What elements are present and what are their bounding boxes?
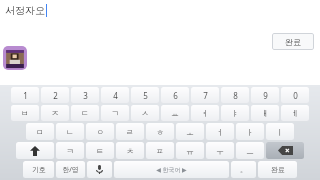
button[interactable]: ㅇ: [86, 123, 114, 140]
staticText: ㅈ: [51, 108, 59, 118]
button[interactable]: ◀ 한국어 ▶: [114, 161, 229, 178]
staticText: ㅔ: [291, 108, 299, 118]
button[interactable]: ㅅ: [131, 105, 159, 121]
staticText: ㅌ: [96, 146, 104, 156]
button[interactable]: 9: [251, 87, 279, 103]
button[interactable]: 7: [191, 87, 219, 103]
button[interactable]: ㄹ: [116, 123, 144, 140]
button[interactable]: ㅌ: [86, 142, 114, 159]
button[interactable]: ㄷ: [71, 105, 99, 121]
staticText: 5: [143, 90, 148, 101]
staticText: 서정자오: [5, 4, 45, 17]
button[interactable]: ㅔ: [281, 105, 309, 121]
button[interactable]: ㄴ: [56, 123, 84, 140]
staticText: 9: [263, 90, 268, 101]
staticText: 7: [203, 90, 208, 101]
staticText: ㅛ: [171, 108, 179, 118]
button[interactable]: 한/영: [56, 161, 85, 178]
button[interactable]: ㅁ: [26, 123, 54, 140]
staticText: ㅎ: [156, 127, 164, 137]
button[interactable]: Shift: [16, 142, 54, 159]
staticText: ㅗ: [186, 127, 194, 137]
staticText: ㅂ: [21, 108, 29, 118]
button[interactable]: Backspace: [266, 142, 304, 159]
button[interactable]: ㅍ: [146, 142, 174, 159]
button[interactable]: 5: [131, 87, 159, 103]
staticText: ㅑ: [231, 108, 239, 118]
button[interactable]: ㅐ: [251, 105, 279, 121]
staticText: 1: [23, 90, 28, 101]
button[interactable]: 0: [281, 87, 309, 103]
button[interactable]: 4: [101, 87, 129, 103]
staticText: 완료: [271, 165, 285, 174]
staticText: 2: [53, 90, 58, 101]
staticText: 기호: [32, 165, 46, 174]
button[interactable]: 。: [231, 161, 256, 178]
button[interactable]: ㅜ: [206, 142, 234, 159]
staticText: ㅇ: [96, 127, 104, 137]
staticText: ㄱ: [111, 108, 119, 118]
staticText: 완료: [285, 37, 301, 47]
staticText: 3: [83, 90, 88, 101]
staticText: ㅜ: [216, 146, 224, 156]
staticText: ㅅ: [141, 108, 149, 118]
button[interactable]: ㅑ: [221, 105, 249, 121]
staticText: 。: [240, 165, 247, 174]
staticText: ㅐ: [261, 108, 269, 118]
button[interactable]: ㅡ: [236, 142, 264, 159]
staticText: ㄷ: [81, 108, 89, 118]
button[interactable]: ㅠ: [176, 142, 204, 159]
button[interactable]: ㅏ: [236, 123, 264, 140]
button[interactable]: ㅓ: [206, 123, 234, 140]
staticText: 한/영: [62, 165, 79, 175]
button[interactable]: ㅣ: [266, 123, 294, 140]
staticText: ㄹ: [126, 127, 134, 137]
button[interactable]: 완료: [258, 161, 297, 178]
button[interactable]: ㅕ: [191, 105, 219, 121]
staticText: ㅡ: [246, 146, 254, 156]
button[interactable]: Voice input: [87, 161, 112, 178]
staticText: ◀ 한국어 ▶: [156, 166, 187, 174]
button[interactable]: ㅊ: [116, 142, 144, 159]
button[interactable]: 3: [71, 87, 99, 103]
button[interactable]: Attached image: [3, 46, 27, 70]
staticText: ㅁ: [36, 127, 44, 137]
button[interactable]: 기호: [23, 161, 54, 178]
staticText: 4: [113, 90, 118, 101]
button[interactable]: 1: [11, 87, 39, 103]
button[interactable]: 6: [161, 87, 189, 103]
button[interactable]: ㅎ: [146, 123, 174, 140]
button[interactable]: 완료: [272, 33, 314, 50]
staticText: ㅊ: [126, 146, 134, 156]
staticText: ㅋ: [66, 146, 74, 156]
staticText: ㄴ: [66, 127, 74, 137]
staticText: ㅓ: [216, 127, 224, 137]
staticText: ㅣ: [276, 127, 284, 137]
button[interactable]: ㅛ: [161, 105, 189, 121]
staticText: ㅠ: [186, 146, 194, 156]
staticText: 0: [293, 90, 298, 101]
button[interactable]: ㅂ: [11, 105, 39, 121]
button[interactable]: ㅋ: [56, 142, 84, 159]
staticText: ㅍ: [156, 146, 164, 156]
button[interactable]: ㄱ: [101, 105, 129, 121]
button[interactable]: ㅈ: [41, 105, 69, 121]
staticText: 8: [233, 90, 238, 101]
staticText: 6: [173, 90, 178, 101]
staticText: ㅕ: [201, 108, 209, 118]
staticText: ㅏ: [246, 127, 254, 137]
button[interactable]: 2: [41, 87, 69, 103]
button[interactable]: 8: [221, 87, 249, 103]
button[interactable]: ㅗ: [176, 123, 204, 140]
